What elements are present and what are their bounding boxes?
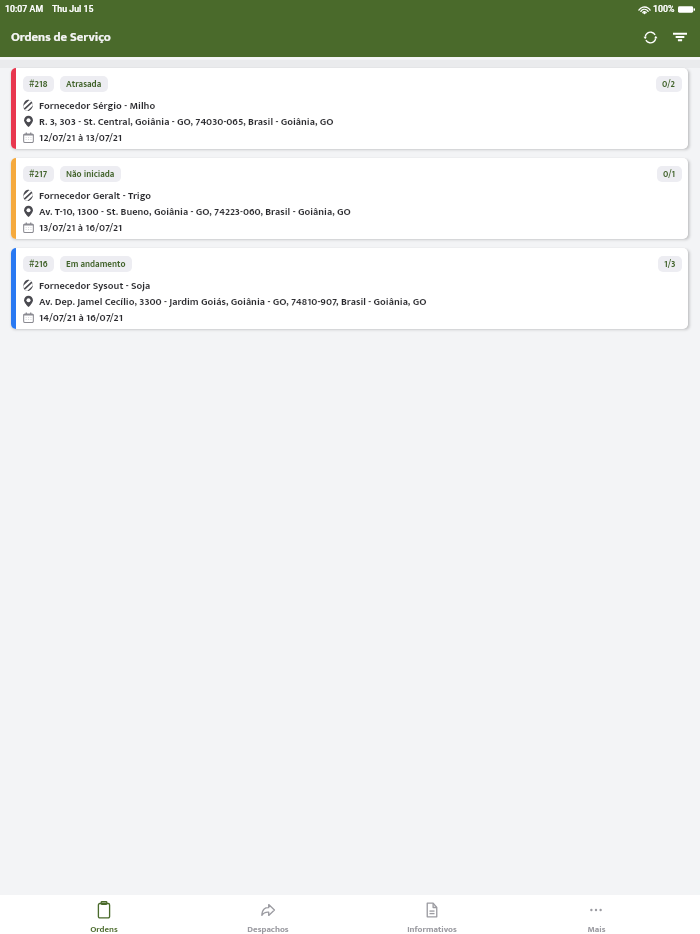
button[interactable]: Despachos: [186, 895, 350, 934]
staticText: R. 3, 303 - St. Central, Goiânia - GO, 7…: [39, 113, 334, 129]
staticText: Thu Jul 15: [52, 4, 94, 14]
staticText: 1/3: [664, 257, 676, 272]
staticText: Fornecedor Sérgio - Milho: [39, 97, 156, 113]
staticText: 13/07/21 à 16/07/21: [39, 219, 123, 235]
staticText: Ordens: [90, 922, 118, 934]
staticText: 10:07 AM: [5, 4, 44, 14]
staticText: Av. T-10, 1300 - St. Bueno, Goiânia - GO…: [39, 203, 351, 219]
staticText: 100%: [653, 4, 675, 14]
staticText: Atrasada: [66, 77, 102, 92]
button[interactable]: Sincronizar: [635, 22, 665, 52]
staticText: Despachos: [247, 922, 289, 934]
staticText: Ordens de Serviço: [11, 27, 111, 48]
staticText: #217: [29, 167, 48, 182]
staticText: 0/2: [662, 77, 676, 92]
button[interactable]: Informativos: [350, 895, 514, 934]
button[interactable]: Mais: [514, 895, 678, 934]
staticText: 14/07/21 à 16/07/21: [39, 309, 123, 325]
staticText: Informativos: [407, 922, 457, 934]
staticText: Mais: [587, 922, 606, 934]
button[interactable]: #216: [11, 248, 688, 329]
staticText: #218: [29, 77, 48, 92]
staticText: #216: [29, 257, 48, 272]
staticText: Fornecedor Geralt - Trigo: [39, 187, 152, 203]
staticText: Av. Dep. Jamel Cecílio, 3300 - Jardim Go…: [39, 293, 427, 309]
button[interactable]: #217: [11, 158, 688, 239]
staticText: Não iniciada: [66, 167, 115, 182]
staticText: Fornecedor Sysout - Soja: [39, 277, 151, 293]
button[interactable]: Ordens: [22, 895, 186, 934]
staticText: 12/07/21 à 13/07/21: [39, 129, 122, 145]
staticText: Em andamento: [66, 257, 126, 272]
staticText: 0/1: [663, 167, 676, 182]
button[interactable]: #218: [11, 68, 688, 149]
button[interactable]: Filtrar: [665, 22, 695, 52]
